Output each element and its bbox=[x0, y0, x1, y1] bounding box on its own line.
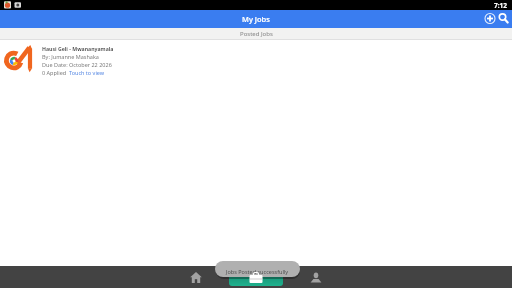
staticText: 0 Applied bbox=[42, 69, 67, 76]
button[interactable]: Touch to view bbox=[69, 69, 105, 76]
button[interactable] bbox=[188, 271, 204, 285]
button[interactable]: Hausi Geli - Mwananyamala bbox=[3, 44, 512, 78]
staticText: Posted Jobs bbox=[240, 30, 273, 38]
staticText: 7:12 bbox=[494, 1, 507, 10]
button[interactable] bbox=[496, 11, 512, 27]
button[interactable] bbox=[308, 271, 324, 285]
button[interactable] bbox=[482, 11, 498, 27]
staticText: My Jobs bbox=[242, 14, 270, 24]
staticText: Hausi Geli - Mwananyamala bbox=[42, 45, 114, 52]
staticText: Jobs Posted successfully bbox=[226, 268, 289, 275]
button[interactable] bbox=[229, 270, 283, 286]
staticText: By: Jumanne Mashaka bbox=[42, 53, 99, 60]
staticText: Due Date: October 22 2026 bbox=[42, 61, 112, 68]
